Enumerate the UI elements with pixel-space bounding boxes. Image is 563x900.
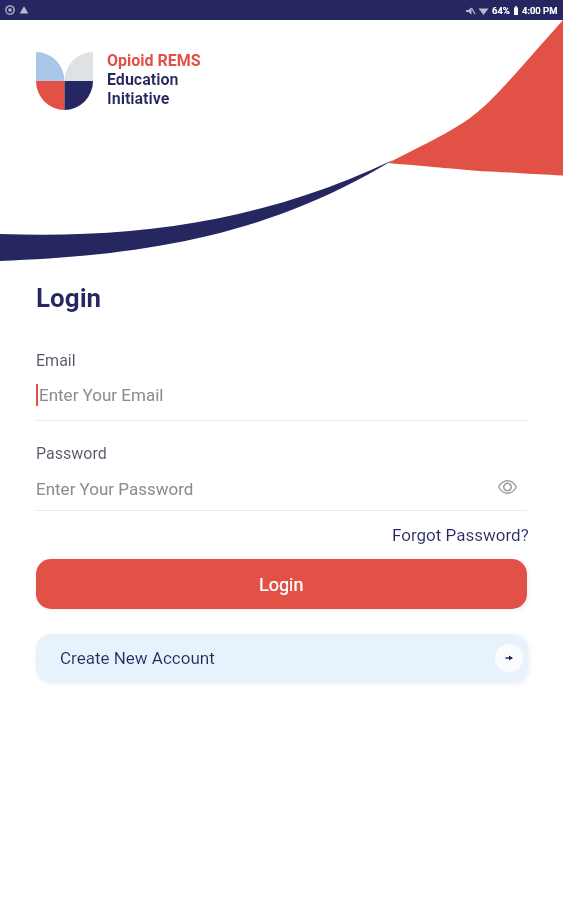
staticText: 64% <box>492 5 510 16</box>
staticText: Initiative <box>107 89 170 108</box>
staticText: Password <box>36 444 107 463</box>
staticText: Enter Your Password <box>36 479 194 499</box>
staticText: 4:00 PM <box>522 5 558 16</box>
button[interactable]: Login <box>36 559 527 609</box>
button[interactable]: Show password <box>492 477 522 497</box>
button[interactable]: Create New Account <box>36 634 527 682</box>
staticText: Education <box>107 70 179 89</box>
staticText: Email <box>36 351 76 370</box>
button[interactable]: Forgot Password? <box>390 522 531 548</box>
staticText: Create New Account <box>60 648 215 668</box>
staticText: Opioid REMS <box>107 51 201 70</box>
staticText: Login <box>259 574 304 595</box>
staticText: Enter Your Email <box>39 385 164 405</box>
staticText: Login <box>36 283 102 313</box>
